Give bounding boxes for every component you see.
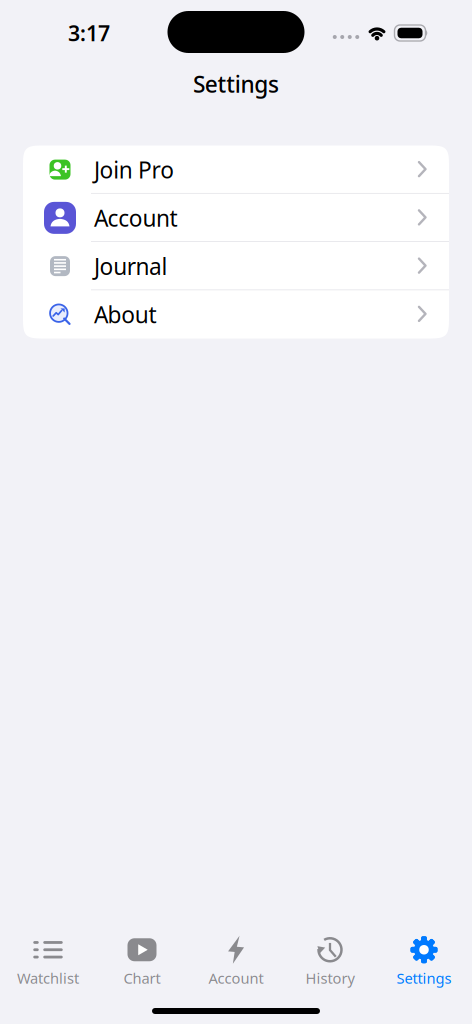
- button[interactable]: History: [283, 936, 377, 988]
- staticText: Settings: [193, 69, 279, 99]
- button[interactable]: Journal: [23, 242, 449, 290]
- button[interactable]: Account: [23, 194, 449, 242]
- button[interactable]: Join Pro: [23, 145, 449, 194]
- button[interactable]: Watchlist: [1, 936, 95, 988]
- staticText: 3:17: [68, 19, 110, 47]
- staticText: Account: [208, 968, 263, 988]
- button[interactable]: About: [23, 290, 449, 338]
- staticText: Settings: [396, 968, 451, 988]
- button[interactable]: Account: [189, 936, 283, 988]
- staticText: Watchlist: [17, 968, 79, 988]
- staticText: Join Pro: [94, 155, 174, 185]
- staticText: History: [305, 968, 354, 988]
- button[interactable]: Chart: [95, 936, 189, 988]
- staticText: About: [94, 299, 156, 329]
- button[interactable]: Settings: [377, 936, 471, 988]
- staticText: Chart: [123, 968, 160, 988]
- staticText: Journal: [94, 251, 168, 281]
- staticText: Account: [94, 203, 178, 233]
